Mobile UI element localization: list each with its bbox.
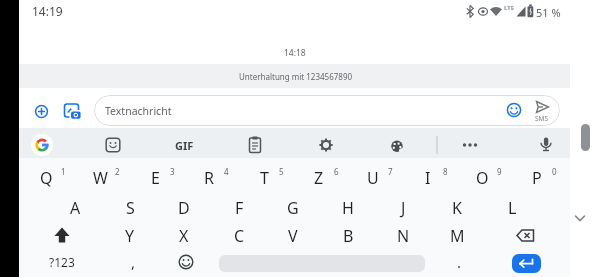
button[interactable]: B	[323, 222, 373, 250]
staticText: G	[287, 197, 299, 219]
button[interactable]	[503, 222, 549, 249]
button[interactable]	[94, 95, 560, 126]
button[interactable]	[99, 131, 127, 157]
staticText: ,	[131, 252, 136, 272]
staticText: D	[178, 197, 190, 219]
staticText: 14:18	[284, 47, 306, 59]
staticText: 51 %	[536, 5, 561, 20]
button[interactable]: G	[268, 193, 318, 222]
button[interactable]: O	[458, 163, 506, 192]
button[interactable]	[529, 96, 557, 124]
staticText: J	[401, 197, 406, 219]
staticText: Q	[40, 167, 53, 189]
staticText: Unterhaltung mit 1234567890	[239, 71, 353, 82]
staticText: 14:19	[32, 3, 63, 19]
staticText: LTE	[504, 4, 515, 12]
button[interactable]: C	[214, 222, 264, 250]
staticText: S	[126, 197, 135, 219]
staticText: T	[260, 167, 269, 189]
staticText: 0	[552, 166, 557, 177]
staticText: Z	[314, 167, 324, 189]
button[interactable]: L	[487, 193, 537, 222]
button[interactable]: A	[50, 193, 100, 222]
staticText: U	[367, 167, 379, 189]
button[interactable]	[241, 131, 269, 157]
button[interactable]	[28, 131, 56, 157]
staticText: 9	[497, 166, 502, 177]
staticText: SMS	[535, 114, 549, 123]
button[interactable]: R	[185, 163, 233, 192]
button[interactable]	[61, 100, 85, 124]
button[interactable]: F	[214, 193, 264, 222]
button[interactable]	[502, 98, 526, 122]
staticText: I	[425, 167, 431, 189]
button[interactable]	[532, 131, 560, 157]
button[interactable]: X	[159, 222, 209, 250]
button[interactable]	[312, 131, 340, 157]
staticText: V	[288, 225, 298, 247]
button[interactable]: M	[432, 222, 482, 250]
staticText: 2	[115, 166, 120, 177]
staticText: H	[342, 197, 354, 219]
button[interactable]	[30, 100, 54, 124]
button[interactable]: Y	[105, 222, 155, 250]
button[interactable]: .	[437, 249, 481, 275]
button[interactable]: GIF	[149, 133, 219, 157]
staticText: 3	[170, 166, 175, 177]
staticText: M	[450, 225, 465, 247]
button[interactable]: T	[240, 163, 288, 192]
button[interactable]: D	[159, 193, 209, 222]
button[interactable]: W	[76, 163, 124, 192]
staticText: 1	[61, 166, 66, 177]
button[interactable]: J	[378, 193, 428, 222]
button[interactable]: K	[432, 193, 482, 222]
button[interactable]: Z	[295, 163, 343, 192]
staticText: GIF	[175, 138, 194, 153]
button[interactable]: Q	[22, 163, 70, 192]
button[interactable]	[456, 131, 484, 157]
button[interactable]: P	[513, 163, 561, 192]
button[interactable]: ?123	[35, 249, 89, 275]
staticText: K	[452, 197, 462, 219]
staticText: A	[70, 197, 81, 219]
staticText: O	[476, 167, 489, 189]
staticText: X	[179, 225, 189, 247]
staticText: W	[93, 167, 108, 189]
button[interactable]	[382, 131, 410, 157]
button[interactable]: ,	[113, 249, 153, 275]
button[interactable]	[40, 222, 84, 249]
button[interactable]: S	[105, 193, 155, 222]
staticText: Textnachricht	[105, 104, 172, 118]
staticText: .	[457, 252, 462, 272]
button[interactable]	[164, 249, 208, 275]
staticText: C	[234, 225, 245, 247]
staticText: 7	[388, 166, 393, 177]
staticText: F	[235, 197, 244, 219]
staticText: Y	[125, 225, 135, 247]
staticText: E	[151, 167, 160, 189]
button[interactable]: E	[131, 163, 179, 192]
button[interactable]: I	[404, 163, 452, 192]
staticText: ?123	[49, 254, 75, 270]
staticText: 5	[279, 166, 284, 177]
staticText: R	[204, 167, 214, 189]
staticText: 8	[443, 166, 448, 177]
button[interactable]: V	[268, 222, 318, 250]
staticText: N	[397, 225, 410, 247]
staticText: B	[343, 225, 354, 247]
button[interactable]	[512, 254, 541, 273]
staticText: 4	[224, 166, 229, 177]
staticText: P	[532, 167, 542, 189]
staticText: L	[508, 197, 517, 219]
button[interactable]: N	[378, 222, 428, 250]
button[interactable]: U	[349, 163, 397, 192]
staticText: 6	[334, 166, 339, 177]
button[interactable]: H	[323, 193, 373, 222]
